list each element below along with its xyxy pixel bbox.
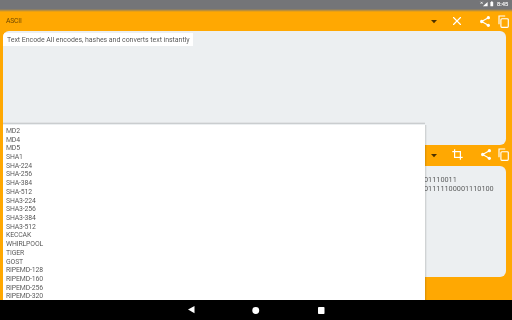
- button[interactable]: RIPEMD-320: [3, 291, 425, 300]
- staticText: 01110011: [424, 175, 457, 184]
- staticText: SHA3-512: [6, 223, 36, 231]
- button[interactable]: [188, 306, 195, 313]
- staticText: MD2: [6, 127, 20, 135]
- button[interactable]: [498, 15, 509, 28]
- button[interactable]: RIPEMD-256: [3, 283, 425, 292]
- button[interactable]: SHA-384: [3, 178, 425, 187]
- staticText: KECCAK: [6, 231, 32, 239]
- button[interactable]: SHA1: [3, 152, 425, 161]
- button[interactable]: MD4: [3, 135, 425, 144]
- staticText: SHA-512: [6, 188, 33, 196]
- button[interactable]: [252, 307, 260, 315]
- button[interactable]: RIPEMD-128: [3, 265, 425, 274]
- staticText: MD5: [6, 144, 20, 152]
- button[interactable]: [498, 148, 509, 161]
- staticText: SHA-384: [6, 179, 33, 187]
- button[interactable]: RIPEMD-160: [3, 274, 425, 283]
- button[interactable]: ASCII: [0, 11, 445, 30]
- staticText: SHA3-224: [6, 197, 36, 205]
- staticText: Text Encode All encodes, hashes and conv…: [7, 36, 190, 44]
- button[interactable]: SHA3-224: [3, 196, 425, 205]
- button[interactable]: SHA-512: [3, 187, 425, 196]
- staticText: ASCII: [6, 17, 22, 25]
- button[interactable]: [318, 307, 325, 314]
- staticText: 01111100001110100: [424, 184, 494, 193]
- button[interactable]: SHA3-512: [3, 222, 425, 231]
- button[interactable]: MD2: [3, 126, 425, 135]
- staticText: WHIRLPOOL: [6, 240, 44, 248]
- staticText: RIPEMD-128: [6, 266, 43, 274]
- staticText: 8:45: [497, 1, 509, 8]
- staticText: SHA3-384: [6, 214, 36, 222]
- button[interactable]: GOST: [3, 257, 425, 266]
- button[interactable]: [480, 16, 490, 27]
- button[interactable]: [481, 149, 491, 160]
- button[interactable]: [453, 17, 461, 25]
- staticText: SHA1: [6, 153, 23, 161]
- staticText: RIPEMD-320: [6, 292, 43, 300]
- staticText: SHA3-256: [6, 205, 36, 213]
- button[interactable]: MD5: [3, 143, 425, 152]
- button[interactable]: SHA-224: [3, 161, 425, 170]
- staticText: GOST: [6, 258, 24, 266]
- button[interactable]: KECCAK: [3, 230, 425, 239]
- button[interactable]: [452, 149, 463, 160]
- button[interactable]: SHA-256: [3, 169, 425, 178]
- button[interactable]: SHA3-256: [3, 204, 425, 213]
- staticText: RIPEMD-160: [6, 275, 43, 283]
- staticText: MD4: [6, 136, 20, 144]
- staticText: SHA-256: [6, 170, 33, 178]
- staticText: RIPEMD-256: [6, 284, 43, 292]
- staticText: TIGER: [6, 249, 25, 257]
- button[interactable]: SHA3-384: [3, 213, 425, 222]
- button[interactable]: TIGER: [3, 248, 425, 257]
- button[interactable]: WHIRLPOOL: [3, 239, 425, 248]
- staticText: SHA-224: [6, 162, 33, 170]
